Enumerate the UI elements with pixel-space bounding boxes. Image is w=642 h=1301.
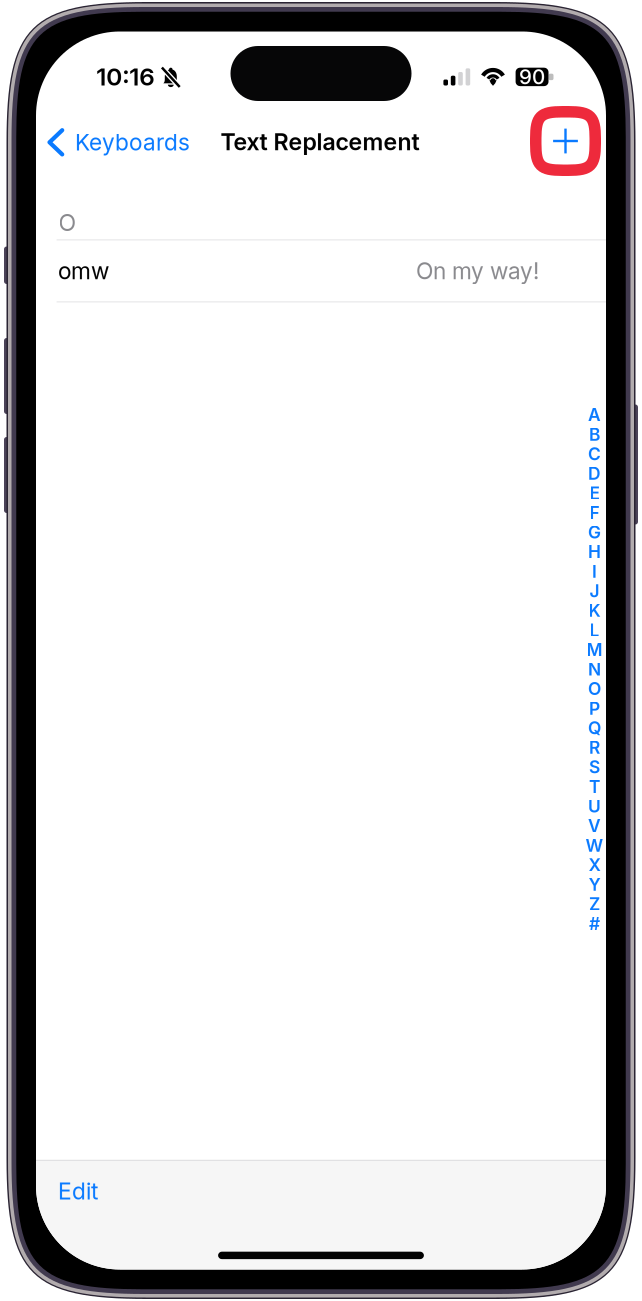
staticText: E bbox=[589, 483, 599, 504]
staticText: 90 bbox=[519, 64, 545, 89]
staticText: Text Replacement bbox=[220, 128, 419, 156]
button[interactable]: Keyboards bbox=[36, 110, 202, 174]
staticText: F bbox=[589, 502, 599, 523]
staticText: K bbox=[588, 600, 600, 621]
staticText: On my way! bbox=[416, 257, 539, 285]
staticText: M bbox=[586, 639, 602, 660]
staticText: 10:16 bbox=[96, 62, 154, 91]
staticText: V bbox=[588, 815, 601, 836]
staticText: U bbox=[588, 796, 601, 817]
staticText: R bbox=[589, 737, 600, 758]
staticText: Edit bbox=[58, 1177, 98, 1205]
staticText: I bbox=[592, 561, 597, 582]
button[interactable]: Add text replacement bbox=[527, 105, 603, 177]
staticText: H bbox=[588, 541, 601, 562]
staticText: G bbox=[588, 522, 601, 543]
staticText: B bbox=[589, 424, 600, 445]
staticText: O bbox=[588, 678, 601, 699]
staticText: J bbox=[589, 580, 599, 601]
staticText: C bbox=[588, 443, 601, 464]
staticText: L bbox=[589, 620, 599, 641]
staticText: D bbox=[588, 463, 601, 484]
staticText: W bbox=[585, 835, 603, 856]
staticText: S bbox=[589, 757, 600, 778]
button[interactable]: omw bbox=[36, 240, 606, 302]
staticText: P bbox=[589, 698, 600, 719]
staticText: Z bbox=[589, 894, 600, 915]
staticText: O bbox=[58, 208, 76, 236]
staticText: Y bbox=[588, 874, 600, 895]
button[interactable]: Section index bbox=[581, 405, 607, 933]
staticText: Q bbox=[588, 717, 601, 738]
staticText: A bbox=[588, 404, 601, 425]
button[interactable]: Edit bbox=[36, 1161, 118, 1221]
staticText: omw bbox=[58, 257, 109, 285]
staticText: T bbox=[589, 776, 600, 797]
staticText: Keyboards bbox=[75, 128, 190, 156]
staticText: X bbox=[588, 854, 600, 875]
staticText: N bbox=[588, 659, 601, 680]
staticText: # bbox=[589, 913, 600, 934]
